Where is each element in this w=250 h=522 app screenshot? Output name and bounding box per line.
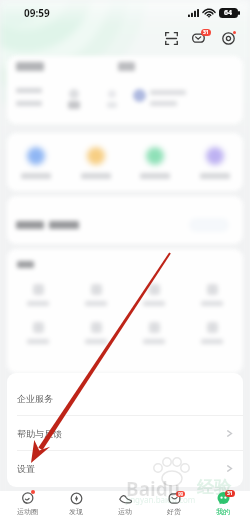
button[interactable]: 31: [201, 491, 245, 516]
button[interactable]: 企业服务: [7, 381, 243, 415]
staticText: 运动圈: [17, 507, 38, 516]
button[interactable]: 运动: [103, 491, 147, 516]
staticText: 设置: [17, 463, 35, 474]
button[interactable]: Settings: [217, 27, 239, 49]
button[interactable]: [191, 322, 233, 344]
staticText: 好货: [167, 507, 181, 516]
staticText: 09:59: [24, 6, 50, 20]
button[interactable]: [191, 284, 233, 306]
staticText: 31: [227, 490, 233, 497]
staticText: 31: [203, 29, 209, 36]
button[interactable]: [13, 147, 58, 179]
staticText: 发现: [69, 507, 83, 516]
button[interactable]: 运动圈: [5, 491, 49, 516]
button[interactable]: [17, 322, 59, 344]
button[interactable]: [73, 147, 118, 179]
button[interactable]: [132, 147, 177, 179]
staticText: 99: [178, 491, 184, 497]
staticText: 经验: [197, 477, 231, 498]
staticText: Baidu: [126, 476, 181, 502]
button[interactable]: [133, 284, 175, 306]
button[interactable]: Messages: [188, 27, 210, 49]
button[interactable]: 99: [152, 491, 196, 516]
staticText: 帮助与反馈: [17, 428, 62, 439]
button[interactable]: 发现: [54, 491, 98, 516]
staticText: 64: [224, 8, 233, 18]
button[interactable]: [17, 284, 59, 306]
button[interactable]: [133, 322, 175, 344]
staticText: 运动: [118, 507, 132, 516]
button[interactable]: [192, 147, 237, 179]
button[interactable]: Scan: [160, 27, 182, 49]
staticText: jingyan.baidu.com: [126, 494, 196, 505]
button[interactable]: [75, 322, 117, 344]
button[interactable]: [75, 284, 117, 306]
button[interactable]: 设置: [7, 451, 243, 485]
button[interactable]: 帮助与反馈: [7, 416, 243, 450]
staticText: 企业服务: [17, 393, 53, 404]
staticText: 我的: [216, 507, 230, 516]
